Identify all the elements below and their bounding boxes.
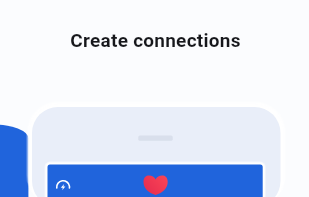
staticText: Create connections	[1, 29, 309, 51]
